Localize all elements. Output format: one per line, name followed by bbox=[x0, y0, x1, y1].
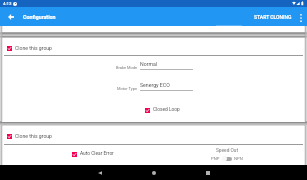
button[interactable]: Home bbox=[134, 166, 174, 180]
button[interactable]: START CLONING bbox=[252, 10, 294, 24]
staticText: Senergy ECO bbox=[140, 82, 170, 88]
staticText: Motor Type bbox=[117, 86, 138, 91]
staticText: Speed Out bbox=[216, 148, 239, 154]
button[interactable]: Back bbox=[4, 10, 18, 24]
button[interactable]: Auto Clear Error bbox=[72, 151, 114, 157]
staticText: Brake Mode bbox=[116, 65, 138, 70]
staticText: Configuration bbox=[23, 14, 56, 20]
button[interactable]: Clone this group bbox=[7, 133, 52, 139]
staticText: Clone this group bbox=[15, 133, 52, 139]
button[interactable]: Speed out PNP NPN toggle bbox=[222, 156, 232, 161]
staticText: Closed Loop bbox=[153, 107, 180, 113]
button[interactable]: Senergy ECO bbox=[140, 82, 193, 91]
staticText: Normal bbox=[140, 61, 158, 67]
staticText: Auto Clear Error bbox=[80, 151, 114, 157]
button[interactable]: Back bbox=[80, 166, 120, 180]
staticText: START CLONING bbox=[254, 14, 292, 20]
staticText: PNP bbox=[211, 156, 220, 161]
button[interactable]: Closed Loop bbox=[145, 107, 180, 113]
staticText: Clone this group bbox=[15, 45, 52, 51]
button[interactable]: Normal bbox=[140, 61, 193, 70]
button[interactable]: Recents bbox=[188, 166, 228, 180]
button[interactable]: More options bbox=[294, 11, 307, 24]
staticText: NPN bbox=[234, 156, 243, 161]
staticText: 4:13 bbox=[3, 1, 12, 6]
button[interactable]: Clone this group bbox=[7, 45, 52, 51]
